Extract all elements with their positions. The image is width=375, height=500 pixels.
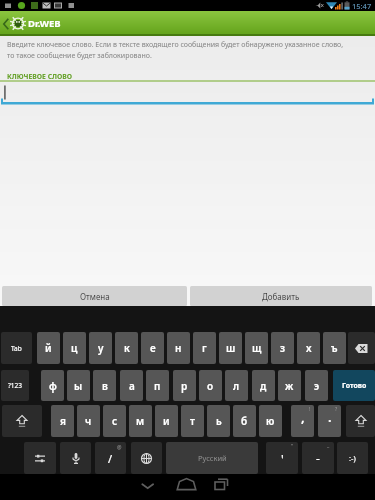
- button[interactable]: ъ: [323, 332, 346, 364]
- staticText: л: [233, 379, 240, 393]
- button[interactable]: х: [297, 332, 320, 364]
- staticText: р: [181, 379, 188, 393]
- staticText: д: [260, 379, 267, 393]
- button[interactable]: ?: [318, 405, 341, 437]
- button[interactable]: к: [115, 332, 138, 364]
- staticText: з: [280, 341, 286, 355]
- staticText: _: [327, 442, 330, 449]
- staticText: й: [45, 341, 52, 355]
- button[interactable]: ы: [67, 370, 90, 401]
- staticText: ?123: [8, 381, 22, 390]
- staticText: :-): [349, 453, 356, 463]
- button[interactable]: Отмена: [2, 286, 187, 306]
- button[interactable]: [131, 442, 162, 474]
- staticText: к: [124, 341, 130, 355]
- button[interactable]: з: [271, 332, 294, 364]
- button[interactable]: е: [141, 332, 164, 364]
- staticText: в: [102, 379, 108, 393]
- button[interactable]: ш: [219, 332, 242, 364]
- button[interactable]: й: [37, 332, 60, 364]
- button[interactable]: п: [146, 370, 169, 401]
- staticText: Добавить: [262, 291, 300, 302]
- staticText: т: [190, 414, 195, 428]
- staticText: ш: [226, 341, 236, 355]
- button[interactable]: ": [266, 442, 298, 474]
- staticText: щ: [252, 341, 262, 355]
- button[interactable]: [0, 474, 375, 500]
- staticText: ": [291, 443, 294, 450]
- staticText: и: [163, 414, 170, 428]
- button[interactable]: [24, 442, 56, 474]
- button[interactable]: я: [51, 405, 74, 437]
- staticText: с: [112, 414, 118, 428]
- button[interactable]: ж: [278, 370, 301, 401]
- staticText: б: [241, 414, 248, 428]
- staticText: у: [98, 341, 104, 355]
- button[interactable]: ч: [77, 405, 100, 437]
- staticText: ю: [266, 414, 275, 428]
- staticText: КЛЮЧЕВОЕ СЛОВО: [7, 72, 73, 81]
- button[interactable]: в: [93, 370, 116, 401]
- staticText: .: [328, 408, 332, 426]
- button[interactable]: э: [305, 370, 328, 401]
- button[interactable]: м: [129, 405, 152, 437]
- button[interactable]: с: [103, 405, 126, 437]
- button[interactable]: Dr.WEB: [2, 11, 375, 36]
- staticText: н: [175, 341, 182, 355]
- button[interactable]: щ: [245, 332, 268, 364]
- button[interactable]: Русский: [166, 442, 258, 474]
- button[interactable]: !: [291, 405, 314, 437]
- button[interactable]: а: [120, 370, 143, 401]
- button[interactable]: г: [193, 332, 216, 364]
- staticText: ф: [49, 379, 57, 393]
- staticText: ы: [74, 379, 83, 393]
- staticText: а: [129, 379, 135, 393]
- button[interactable]: @: [95, 442, 126, 474]
- button[interactable]: Tab: [1, 332, 32, 364]
- staticText: @: [117, 444, 122, 451]
- button[interactable]: ?123: [1, 370, 29, 401]
- button[interactable]: Готово: [333, 370, 375, 401]
- staticText: э: [314, 379, 320, 393]
- button[interactable]: Добавить: [190, 286, 372, 306]
- staticText: Tab: [11, 344, 22, 353]
- staticText: Dr.WEB: [28, 17, 61, 30]
- staticText: ч: [85, 414, 92, 428]
- button[interactable]: т: [181, 405, 204, 437]
- staticText: п: [154, 379, 161, 393]
- button[interactable]: [2, 405, 42, 437]
- button[interactable]: д: [252, 370, 275, 401]
- staticText: Введите ключевое слово. Если в тексте вх…: [7, 40, 344, 60]
- staticText: я: [60, 414, 66, 428]
- button[interactable]: [1, 83, 374, 104]
- button[interactable]: р: [173, 370, 196, 401]
- staticText: ?: [335, 406, 338, 413]
- button[interactable]: л: [225, 370, 248, 401]
- staticText: Отмена: [80, 291, 110, 302]
- button[interactable]: [346, 405, 375, 437]
- button[interactable]: н: [167, 332, 190, 364]
- button[interactable]: ю: [259, 405, 282, 437]
- button[interactable]: [60, 442, 91, 474]
- button[interactable]: ь: [207, 405, 230, 437]
- staticText: ж: [285, 379, 294, 393]
- button[interactable]: б: [233, 405, 256, 437]
- button[interactable]: ф: [41, 370, 64, 401]
- staticText: г: [202, 341, 207, 355]
- staticText: ь: [216, 414, 222, 428]
- staticText: -: [316, 450, 320, 466]
- staticText: м: [136, 414, 145, 428]
- button[interactable]: и: [155, 405, 178, 437]
- staticText: ъ: [331, 341, 338, 355]
- staticText: !: [309, 406, 311, 413]
- button[interactable]: ц: [63, 332, 86, 364]
- button[interactable]: о: [199, 370, 222, 401]
- staticText: ': [281, 451, 284, 467]
- button[interactable]: :-): [337, 442, 368, 474]
- staticText: е: [150, 341, 156, 355]
- button[interactable]: _: [302, 442, 334, 474]
- staticText: ,: [301, 408, 305, 426]
- staticText: Готово: [342, 381, 367, 391]
- button[interactable]: [348, 332, 375, 364]
- button[interactable]: у: [89, 332, 112, 364]
